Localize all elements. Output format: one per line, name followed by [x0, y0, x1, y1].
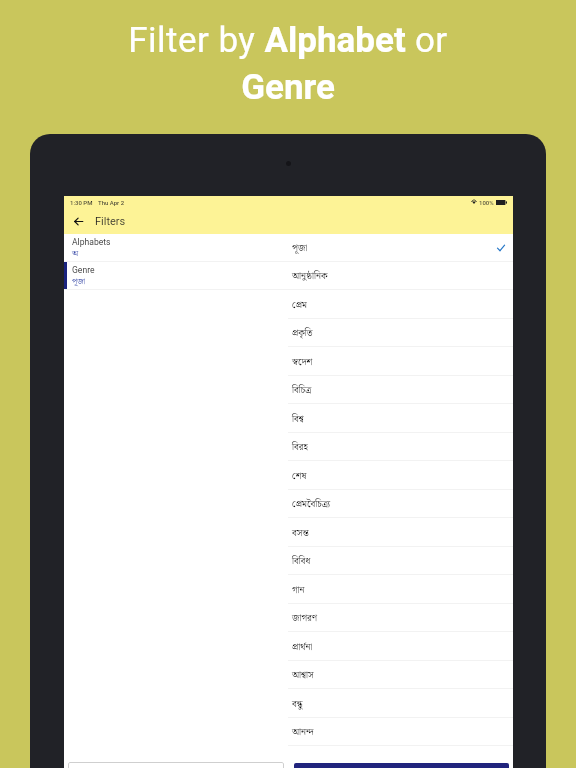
staticText: পূজা	[292, 241, 308, 256]
button[interactable]: প্রার্থনা	[288, 633, 513, 661]
button[interactable]: Genre	[64, 262, 288, 290]
staticText: আনন্দ	[292, 725, 314, 740]
button[interactable]: Apply	[294, 763, 509, 768]
staticText: শেষ	[292, 469, 307, 484]
staticText: বন্ধু	[292, 697, 303, 712]
button[interactable]: বিরহ	[288, 433, 513, 461]
staticText: আশ্বাস	[292, 668, 314, 683]
staticText: Filters	[95, 215, 126, 228]
button[interactable]: শেষ	[288, 462, 513, 490]
button[interactable]: জাগরণ	[288, 604, 513, 632]
staticText: Alphabets	[72, 237, 111, 247]
button[interactable]: প্রকৃতি	[288, 319, 513, 347]
button[interactable]: Back	[64, 208, 92, 234]
button[interactable]: পূজা	[288, 234, 513, 262]
staticText: পূজা	[72, 275, 86, 288]
staticText: প্রকৃতি	[292, 326, 313, 341]
button[interactable]: বিশ্ব	[288, 405, 513, 433]
button[interactable]: বিবিধ	[288, 547, 513, 575]
button[interactable]: বন্ধু	[288, 690, 513, 718]
staticText: 100%	[479, 199, 494, 206]
button[interactable]: প্রেমবৈচিত্র্য	[288, 490, 513, 518]
staticText: প্রেমবৈচিত্র্য	[292, 497, 331, 512]
button[interactable]: Reset	[68, 762, 284, 768]
button[interactable]: বসন্ত	[288, 519, 513, 547]
staticText: বিশ্ব	[292, 412, 304, 427]
staticText: বসন্ত	[292, 526, 309, 541]
button[interactable]: গান	[288, 576, 513, 604]
staticText: অ	[72, 247, 79, 260]
button[interactable]: প্রেম	[288, 291, 513, 319]
staticText: Thu Apr 2	[98, 199, 125, 206]
staticText: গান	[292, 583, 305, 598]
button[interactable]: আনুষ্ঠানিক	[288, 262, 513, 290]
staticText: বিচিত্র	[292, 383, 312, 398]
button[interactable]: আশ্বাস	[288, 661, 513, 689]
staticText: স্বদেশ	[292, 355, 313, 370]
button[interactable]: বিচিত্র	[288, 376, 513, 404]
staticText: বিরহ	[292, 440, 308, 455]
staticText: Filter by Alphabet or Genre	[100, 20, 476, 108]
button[interactable]: Alphabets	[64, 234, 288, 262]
staticText: বিবিধ	[292, 554, 311, 569]
staticText: জাগরণ	[292, 611, 318, 626]
button[interactable]: আনন্দ	[288, 718, 513, 746]
staticText: প্রার্থনা	[292, 640, 313, 655]
staticText: প্রেম	[292, 298, 307, 313]
button[interactable]: স্বদেশ	[288, 348, 513, 376]
staticText: Genre	[72, 265, 95, 275]
staticText: 1:30 PM	[70, 199, 93, 206]
staticText: আনুষ্ঠানিক	[292, 269, 328, 284]
